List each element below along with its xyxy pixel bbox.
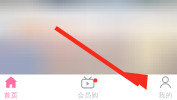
button[interactable]: 首页 xyxy=(0,75,39,100)
button[interactable]: 会员购 xyxy=(60,75,116,100)
button[interactable]: 我的 xyxy=(137,75,177,100)
staticText: 我的 xyxy=(158,91,172,99)
staticText: 首页 xyxy=(4,91,18,99)
staticText: 会员购 xyxy=(77,91,98,99)
